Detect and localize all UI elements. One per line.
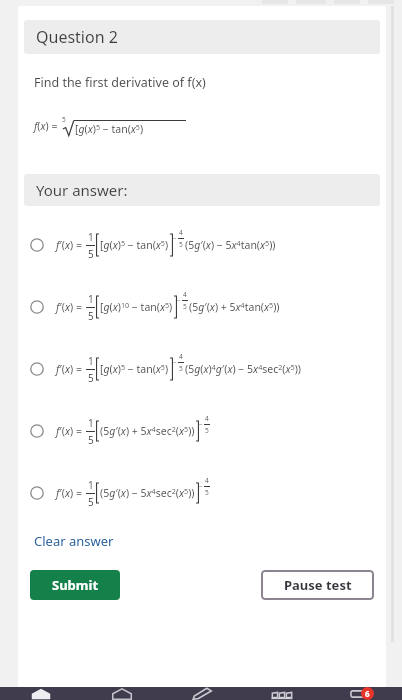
staticText: f(x) = bbox=[34, 119, 61, 133]
staticText: Clear answer bbox=[34, 532, 114, 550]
button[interactable]: f′(x) = bbox=[18, 338, 386, 400]
staticText: 6 bbox=[365, 688, 370, 699]
staticText: 1 bbox=[88, 230, 94, 244]
staticText: 5 bbox=[88, 371, 94, 385]
staticText: 1 bbox=[88, 416, 94, 430]
staticText: − bbox=[173, 358, 177, 367]
staticText: 4 bbox=[183, 290, 187, 299]
staticText: f′(x) = bbox=[56, 300, 85, 314]
staticText: 1 bbox=[88, 292, 94, 306]
button[interactable]: f′(x) = bbox=[18, 400, 386, 462]
staticText: f′(x) = bbox=[56, 238, 85, 252]
button[interactable]: Pause test bbox=[261, 570, 374, 600]
staticText: [g(x)5 − tan(x5) bbox=[100, 362, 169, 376]
button[interactable]: f′(x) = bbox=[18, 214, 386, 276]
staticText: f′(x) = bbox=[56, 486, 85, 500]
staticText: − bbox=[199, 482, 203, 491]
staticText: 5 bbox=[183, 302, 187, 311]
staticText: Find the first derivative of f(x) bbox=[34, 74, 206, 91]
button[interactable]: Home bbox=[0, 687, 81, 700]
staticText: f′(x) = bbox=[56, 362, 85, 376]
staticText: − bbox=[177, 296, 181, 305]
staticText: 4 bbox=[205, 476, 209, 485]
button[interactable]: f′(x) = bbox=[18, 276, 386, 338]
staticText: 1 bbox=[88, 478, 94, 492]
staticText: 5 bbox=[205, 488, 209, 497]
staticText: 5 bbox=[62, 115, 66, 124]
staticText: 4 bbox=[179, 352, 183, 361]
button[interactable]: Inbox bbox=[322, 687, 402, 700]
staticText: [g(x)10 − tan(x5) bbox=[100, 300, 173, 314]
staticText: Your answer: bbox=[36, 180, 128, 200]
staticText: (5g′(x) − 5x4tan(x5)) bbox=[185, 238, 276, 252]
staticText: Question 2 bbox=[36, 26, 118, 48]
staticText: 4 bbox=[205, 414, 209, 423]
staticText: (5g′(x) + 5x4sec2(x5)) bbox=[100, 424, 195, 438]
staticText: (5g′(x) − 5x4sec2(x5)) bbox=[100, 486, 195, 500]
staticText: 5 bbox=[88, 309, 94, 323]
staticText: [g(x)5 − tan(x5) bbox=[100, 238, 169, 252]
staticText: 5 bbox=[179, 240, 183, 249]
button[interactable]: Courses bbox=[81, 687, 162, 700]
button[interactable]: Practice bbox=[162, 687, 242, 700]
staticText: (5g(x)4g′(x) − 5x4sec2(x5)) bbox=[185, 362, 301, 376]
button[interactable]: Library bbox=[242, 687, 322, 700]
staticText: f′(x) = bbox=[56, 424, 85, 438]
button[interactable]: Submit bbox=[30, 570, 120, 600]
staticText: 5 bbox=[88, 495, 94, 509]
staticText: 5 bbox=[179, 364, 183, 373]
staticText: 5 bbox=[88, 433, 94, 447]
button[interactable]: Clear answer bbox=[26, 528, 122, 554]
staticText: Pause test bbox=[284, 576, 352, 594]
staticText: Submit bbox=[52, 576, 99, 594]
button[interactable]: f′(x) = bbox=[18, 462, 386, 524]
staticText: (5g′(x) + 5x4tan(x5)) bbox=[189, 300, 280, 314]
staticText: 4 bbox=[179, 228, 183, 237]
staticText: 5 bbox=[205, 426, 209, 435]
staticText: [g(x)5 − tan(x5) bbox=[75, 122, 144, 136]
staticText: 5 bbox=[88, 247, 94, 261]
staticText: − bbox=[199, 420, 203, 429]
staticText: − bbox=[173, 234, 177, 243]
staticText: 1 bbox=[88, 354, 94, 368]
